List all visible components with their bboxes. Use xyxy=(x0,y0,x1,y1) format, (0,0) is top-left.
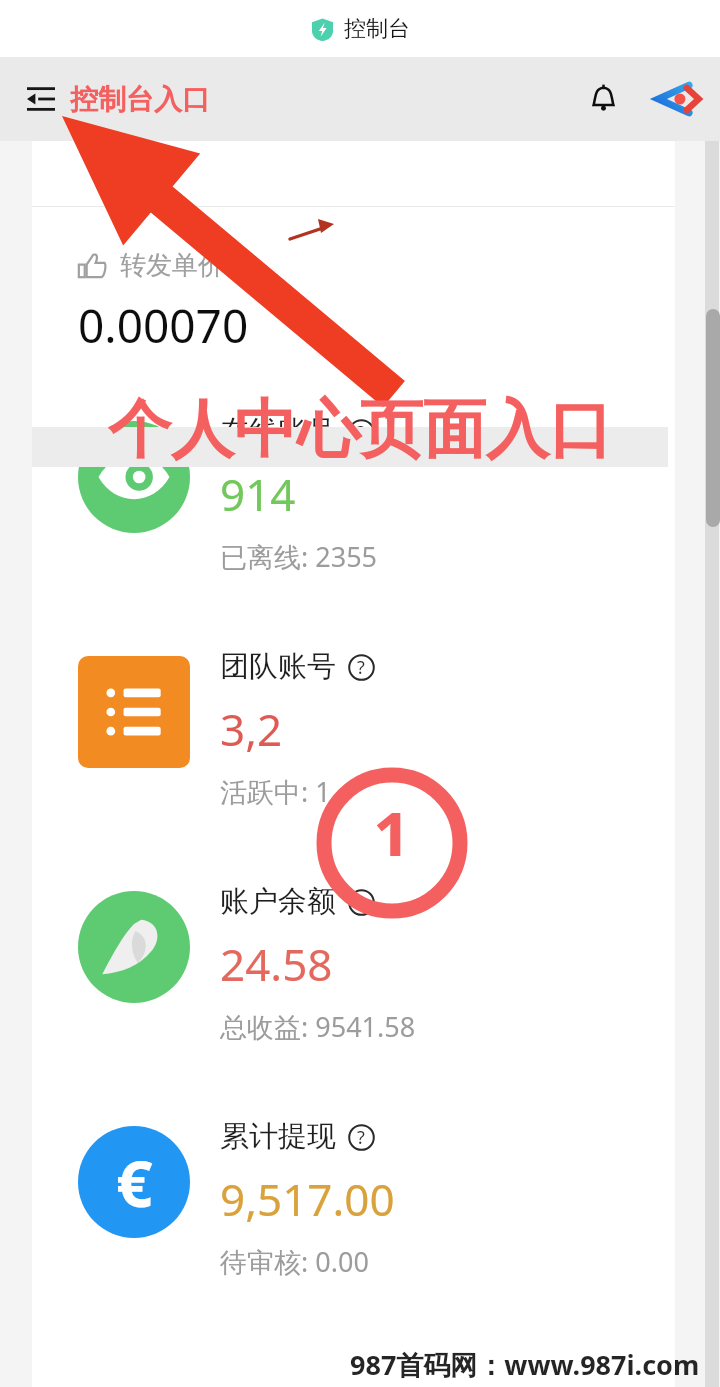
button[interactable]: App logo xyxy=(650,71,706,127)
staticText: 24.58 xyxy=(220,934,333,994)
button[interactable]: 转发单价 xyxy=(78,249,224,282)
button[interactable]: Help xyxy=(346,652,376,682)
button[interactable]: Help xyxy=(346,417,376,447)
staticText: 账户余额 xyxy=(220,883,336,920)
button[interactable]: 团队账号 xyxy=(32,644,675,879)
staticText: ? xyxy=(357,420,365,445)
button[interactable]: Menu xyxy=(20,78,62,120)
button[interactable]: 控制台入口 xyxy=(70,82,210,117)
button[interactable]: 账户余额 xyxy=(32,879,675,1114)
staticText: 活跃中: 1 xyxy=(220,773,331,810)
button[interactable]: € xyxy=(32,1114,675,1349)
staticText: 控制台 xyxy=(344,15,410,43)
staticText: 9,517.00 xyxy=(220,1169,395,1229)
button[interactable]: Help xyxy=(346,1122,376,1152)
staticText: ? xyxy=(357,655,365,680)
staticText: 转发单价 xyxy=(120,249,224,282)
staticText: 总收益: 9541.58 xyxy=(220,1008,416,1045)
button[interactable]: Notifications xyxy=(578,74,628,124)
staticText: 1 xyxy=(373,790,411,856)
staticText: 914 xyxy=(220,464,296,524)
staticText: 3,2 xyxy=(220,699,283,759)
staticText: ? xyxy=(357,1125,365,1150)
staticText: 个人中心页面入口 xyxy=(108,390,612,469)
staticText: 待审核: 0.00 xyxy=(220,1243,369,1280)
staticText: 团队账号 xyxy=(220,648,336,685)
staticText: 在线账号 xyxy=(220,413,336,450)
button[interactable]: Help xyxy=(346,887,376,917)
staticText: 控制台入口 xyxy=(70,82,210,117)
staticText: 0.00070 xyxy=(78,294,249,357)
staticText: 987首码网：www.987i.com xyxy=(350,1346,700,1383)
staticText: ? xyxy=(357,890,365,915)
staticText: € xyxy=(116,1139,153,1226)
button[interactable]: 在线账号 xyxy=(32,409,675,644)
staticText: 已离线: 2355 xyxy=(220,538,378,575)
staticText: 累计提现 xyxy=(220,1118,336,1155)
